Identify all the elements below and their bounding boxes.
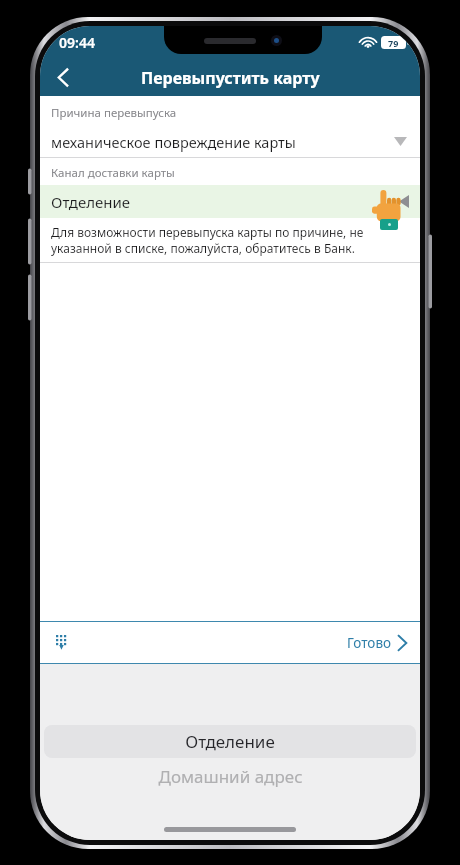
staticText: механическое повреждение карты bbox=[51, 132, 394, 152]
staticText: Отделение bbox=[51, 192, 399, 212]
staticText: Канал доставки карты bbox=[51, 165, 175, 181]
staticText: 09:44 bbox=[59, 33, 95, 52]
button[interactable]: Скрыть клавиатуру bbox=[40, 622, 84, 663]
staticText: Отделение bbox=[185, 730, 275, 753]
staticText: 79 bbox=[388, 37, 399, 49]
button[interactable]: Назад bbox=[40, 59, 86, 96]
button[interactable]: Готово bbox=[347, 622, 420, 663]
staticText: Готово bbox=[347, 634, 392, 652]
staticText: Домашний адрес bbox=[158, 765, 303, 788]
button[interactable]: механическое повреждение карты bbox=[40, 126, 420, 157]
button[interactable]: Отделение bbox=[40, 185, 420, 218]
button[interactable]: Отделение bbox=[44, 725, 416, 758]
staticText: Для возможности перевыпуска карты по при… bbox=[51, 224, 364, 256]
button[interactable]: Домашний адрес bbox=[40, 762, 420, 790]
staticText: Причина перевыпуска bbox=[51, 105, 177, 121]
staticText: Перевыпустить карту bbox=[141, 67, 320, 89]
